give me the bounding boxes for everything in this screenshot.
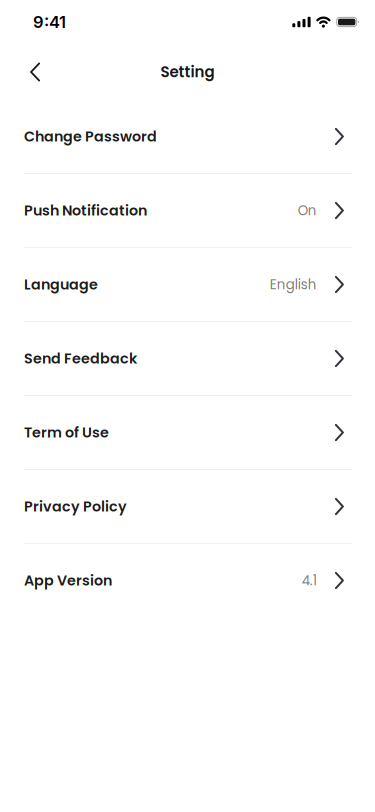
button[interactable]: App Version [0, 544, 375, 617]
staticText: Language [24, 274, 98, 294]
staticText: 9:41 [33, 12, 66, 32]
button[interactable]: Push Notification [0, 174, 375, 247]
button[interactable]: Privacy Policy [0, 470, 375, 543]
staticText: Setting [160, 61, 214, 82]
button[interactable]: Term of Use [0, 396, 375, 469]
staticText: App Version [24, 570, 112, 590]
staticText: Push Notification [24, 200, 147, 220]
staticText: Send Feedback [24, 348, 137, 368]
staticText: Change Password [24, 126, 157, 146]
button[interactable]: Send Feedback [0, 322, 375, 395]
staticText: English [270, 275, 317, 294]
staticText: Term of Use [24, 422, 109, 442]
button[interactable]: Language [0, 248, 375, 321]
staticText: 4.1 [302, 571, 317, 590]
button[interactable]: Change Password [0, 100, 375, 173]
staticText: On [298, 201, 317, 220]
staticText: Privacy Policy [24, 496, 127, 516]
button[interactable]: Back [0, 44, 60, 100]
